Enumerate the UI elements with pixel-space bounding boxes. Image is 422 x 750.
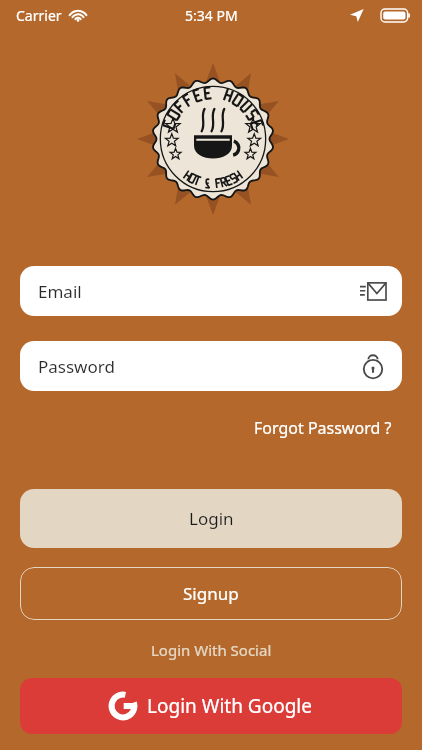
staticText: Login With Social	[151, 640, 272, 660]
staticText: Carrier	[16, 6, 62, 25]
button[interactable]: Login With Google	[20, 678, 402, 734]
staticText: Login With Google	[147, 693, 312, 719]
button[interactable]: Email	[20, 266, 402, 316]
staticText: Login	[189, 507, 234, 530]
staticText: Forgot Password ?	[254, 417, 392, 439]
other: Email	[360, 280, 386, 302]
button[interactable]: Forgot Password ?	[222, 414, 392, 442]
staticText: Signup	[183, 582, 239, 605]
staticText: Email	[38, 280, 82, 303]
staticText: Password	[38, 355, 115, 378]
other: Show password	[362, 354, 384, 378]
button[interactable]: Signup	[20, 567, 402, 620]
button[interactable]: Password	[20, 341, 402, 391]
staticText: 5:34 PM	[185, 6, 238, 25]
button[interactable]: Login	[20, 489, 402, 548]
